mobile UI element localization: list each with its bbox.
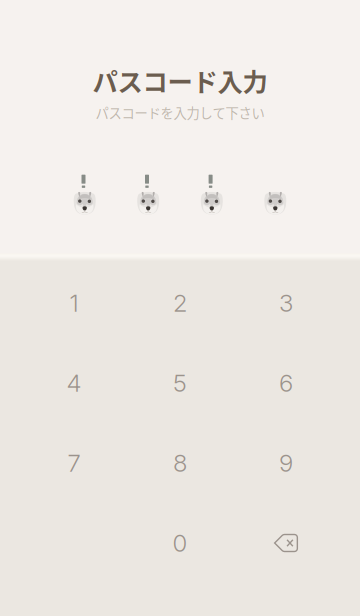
staticText: 4: [66, 368, 81, 397]
staticText: 7: [67, 448, 80, 477]
button[interactable]: 5: [127, 343, 233, 423]
staticText: パスコード入力: [92, 62, 267, 99]
staticText: 3: [279, 288, 293, 317]
staticText: 1: [69, 288, 78, 317]
staticText: 5: [173, 368, 187, 397]
button[interactable]: 2: [127, 263, 233, 343]
button[interactable]: 4: [21, 343, 127, 423]
button[interactable]: 9: [233, 423, 339, 503]
staticText: 9: [279, 448, 293, 477]
staticText: 6: [279, 368, 293, 397]
staticText: パスコードを入力して下さい: [95, 103, 264, 122]
staticText: 8: [173, 448, 187, 477]
staticText: 0: [172, 528, 187, 557]
button[interactable]: 6: [233, 343, 339, 423]
button[interactable]: 3: [233, 263, 339, 343]
button[interactable]: 8: [127, 423, 233, 503]
button[interactable]: Delete: [233, 503, 339, 583]
button[interactable]: 1: [21, 263, 127, 343]
button[interactable]: 0: [127, 503, 233, 583]
button[interactable]: 7: [21, 423, 127, 503]
staticText: 2: [173, 288, 187, 317]
